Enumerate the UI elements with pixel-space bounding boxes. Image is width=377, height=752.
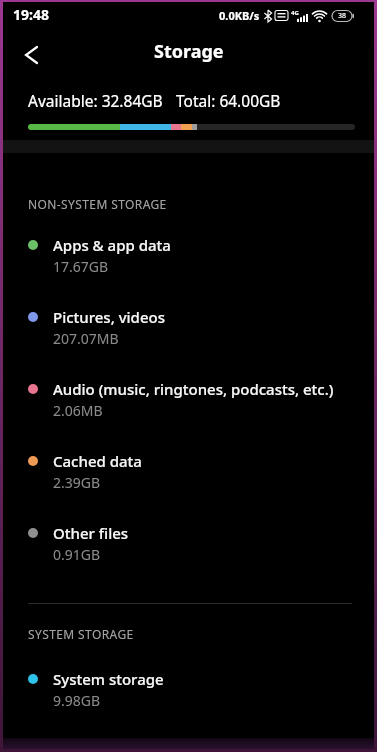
staticText: NON-SYSTEM STORAGE [28, 196, 167, 212]
staticText: Storage [154, 39, 224, 64]
staticText: Other files [53, 523, 129, 543]
staticText: Pictures, videos [53, 307, 165, 327]
staticText: Available: 32.84GB [28, 90, 163, 111]
button[interactable]: Cached data [3, 440, 374, 512]
staticText: 207.07MB [53, 329, 119, 348]
staticText: Total: 64.00GB [176, 90, 281, 111]
staticText: 38 [338, 11, 347, 21]
staticText: 4G [291, 9, 299, 17]
button[interactable] [12, 36, 50, 74]
button[interactable]: Audio (music, ringtones, podcasts, etc.) [3, 368, 374, 440]
staticText: Audio (music, ringtones, podcasts, etc.) [53, 379, 334, 399]
staticText: 9.98GB [53, 691, 101, 710]
staticText: 17.67GB [53, 257, 109, 276]
button[interactable]: Other files [3, 512, 374, 584]
staticText: Apps & app data [53, 235, 171, 255]
staticText: Cached data [53, 451, 142, 471]
staticText: SYSTEM STORAGE [28, 626, 134, 642]
button[interactable]: Apps & app data [3, 224, 374, 296]
staticText: 0.0KB/s [219, 8, 260, 23]
button[interactable]: Pictures, videos [3, 296, 374, 368]
button[interactable]: System storage [3, 658, 374, 730]
staticText: 19:48 [13, 5, 49, 24]
staticText: 0.91GB [53, 545, 101, 564]
staticText: 2.06MB [53, 401, 103, 420]
staticText: System storage [53, 669, 164, 689]
staticText: 2.39GB [53, 473, 101, 492]
